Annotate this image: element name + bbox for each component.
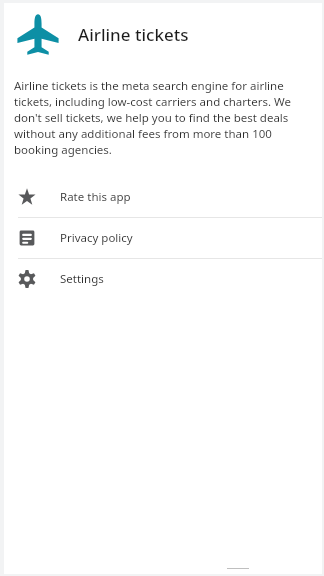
staticText: Settings (60, 271, 104, 287)
other: Airline tickets logo (17, 13, 59, 55)
staticText: Rate this app (60, 189, 131, 205)
button[interactable]: Rate this app (4, 177, 322, 217)
staticText: Privacy policy (60, 230, 133, 246)
staticText: Airline tickets is the meta search engin… (14, 78, 310, 158)
button[interactable]: Privacy policy (4, 218, 322, 258)
button[interactable]: Settings (4, 259, 322, 299)
staticText: Airline tickets (78, 23, 189, 46)
